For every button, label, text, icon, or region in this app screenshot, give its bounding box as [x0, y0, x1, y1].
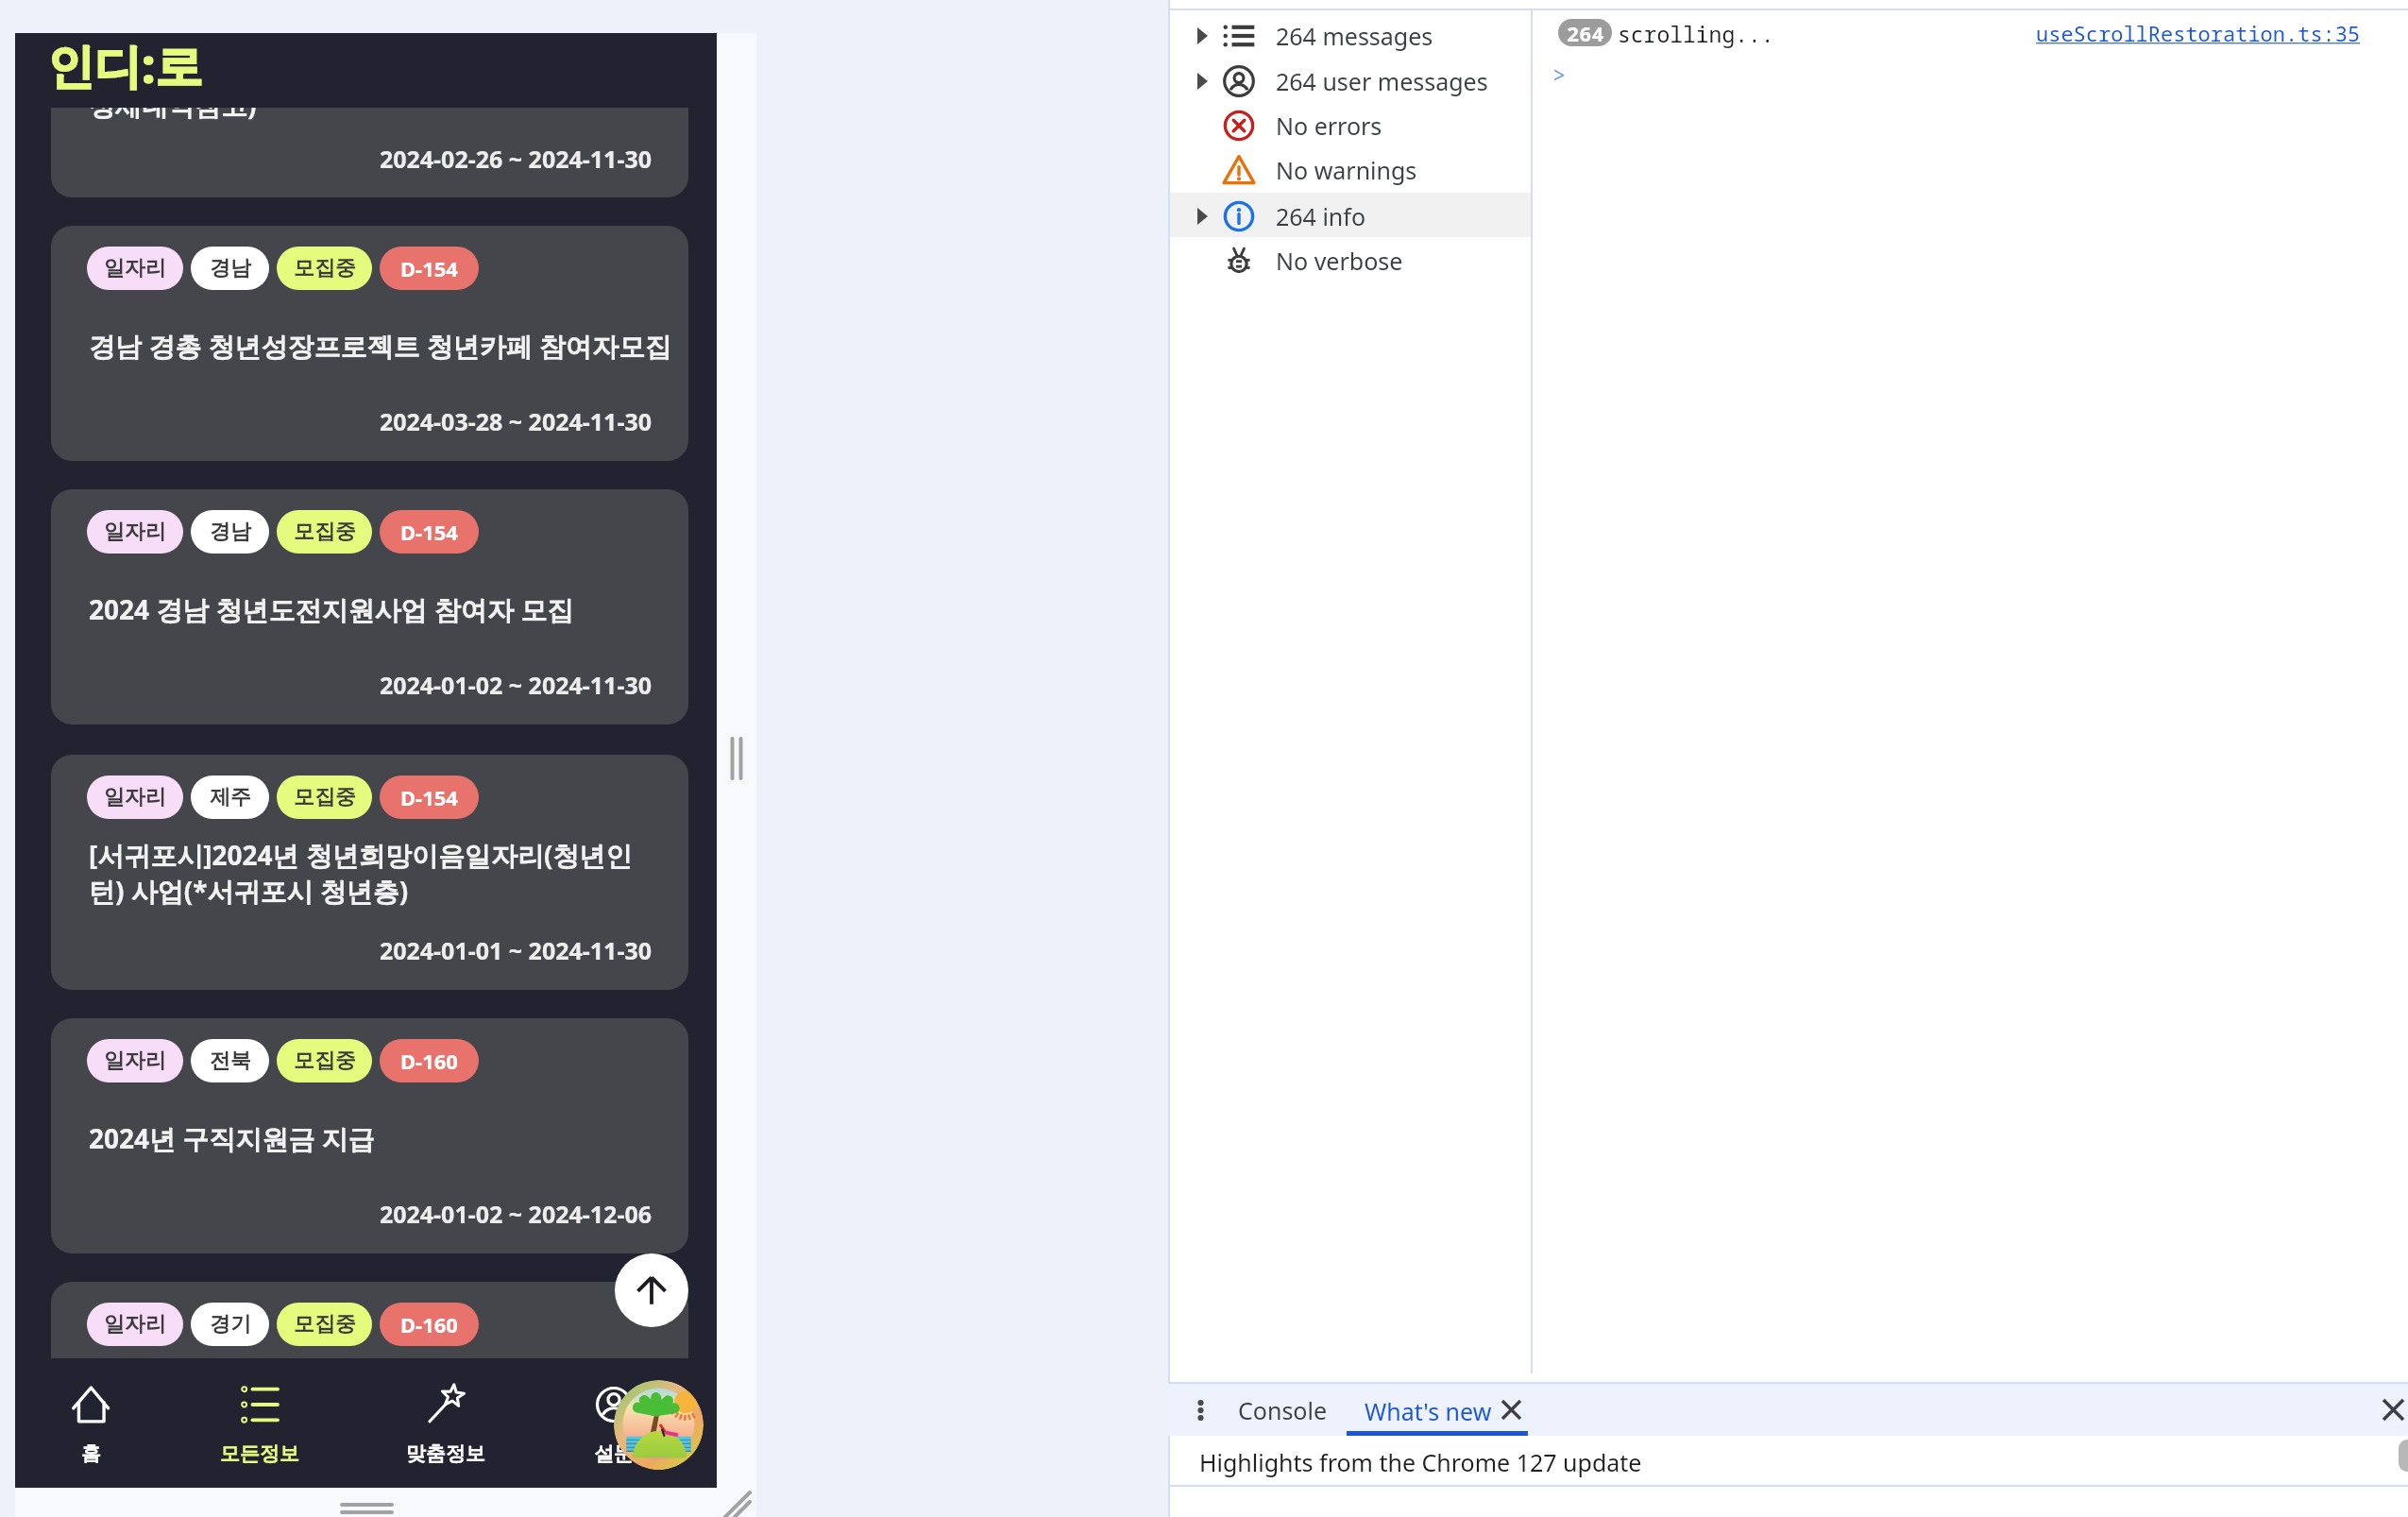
button[interactable]: D-160	[380, 1303, 479, 1346]
button[interactable]: 전북	[191, 1039, 269, 1082]
staticText: 설문	[594, 1441, 634, 1466]
button[interactable]: 모집중	[277, 1039, 372, 1082]
staticText: 2024 경남 청년도전지원사업 참여자 모집	[89, 591, 574, 627]
staticText: [서귀포시]2024년 청년희망이음일자리(청년인	[89, 837, 633, 873]
button[interactable]: Profile	[614, 1380, 704, 1470]
button[interactable]: 모집중	[277, 1303, 372, 1346]
button[interactable]	[1170, 58, 1531, 105]
button[interactable]: 일자리	[87, 510, 183, 554]
staticText: 인디:로	[47, 33, 203, 97]
staticText: >	[1552, 59, 1567, 90]
button[interactable]: 일자리	[87, 247, 183, 290]
staticText: 홈	[81, 1441, 101, 1466]
staticText: What's new	[1365, 1395, 1492, 1427]
button[interactable]: 모든정보	[203, 1364, 316, 1482]
button[interactable]: 일자리	[51, 755, 688, 990]
staticText: 일자리	[104, 1311, 166, 1338]
staticText: No verbose	[1276, 245, 1403, 277]
staticText: 2024-02-26 ~ 2024-11-30	[51, 143, 652, 175]
button[interactable]	[1170, 237, 1531, 284]
staticText: 264 messages	[1276, 20, 1433, 52]
staticText: useScrollRestoration.ts:35	[2036, 19, 2361, 47]
button[interactable]: D-160	[380, 1039, 479, 1082]
button[interactable]: 제주	[191, 776, 269, 819]
staticText: 모집중	[294, 255, 356, 281]
staticText: 일자리	[104, 1048, 166, 1074]
staticText: 2024-03-28 ~ 2024-11-30	[51, 405, 652, 437]
button[interactable]: Console	[1228, 1388, 1338, 1432]
staticText: 모든정보	[220, 1441, 299, 1466]
staticText: 일자리	[104, 784, 166, 810]
button[interactable]: D-154	[380, 510, 479, 554]
button[interactable]	[1170, 146, 1531, 194]
button[interactable]: 상세내역참고)	[51, 108, 688, 197]
button[interactable]: 일자리	[87, 1303, 183, 1346]
staticText: 경기	[210, 1311, 251, 1338]
button[interactable]: 모집중	[277, 776, 372, 819]
button[interactable]: 맞춤정보	[389, 1364, 502, 1482]
staticText: Console	[1238, 1394, 1328, 1426]
button[interactable]: 홈	[34, 1364, 147, 1482]
staticText: 2024년 구직지원금 지급	[89, 1120, 375, 1156]
button[interactable]: 일자리	[87, 1039, 183, 1082]
staticText: scrolling...	[1618, 19, 1774, 48]
button[interactable]: 설문	[557, 1364, 670, 1482]
button[interactable]: 모집중	[277, 247, 372, 290]
button[interactable]: 일자리	[51, 489, 688, 724]
button[interactable]: Close drawer	[2374, 1390, 2408, 1429]
button[interactable]: 경기	[191, 1303, 269, 1346]
staticText: 전북	[210, 1048, 251, 1074]
button[interactable]	[1170, 102, 1531, 149]
staticText: 경남 경총 청년성장프로젝트 청년카페 참여자모집	[89, 328, 672, 364]
button[interactable]	[1170, 12, 1531, 60]
staticText: Highlights from the Chrome 127 update	[1199, 1446, 1642, 1478]
staticText: 일자리	[104, 519, 166, 545]
staticText: 모집중	[294, 519, 356, 545]
staticText: No errors	[1276, 110, 1382, 142]
staticText: D-154	[400, 518, 458, 546]
button[interactable]: Scroll to top	[615, 1253, 688, 1327]
staticText: 모집중	[294, 784, 356, 810]
staticText: 제주	[210, 784, 251, 810]
staticText: 경남	[210, 519, 251, 545]
staticText: 2024-01-01 ~ 2024-11-30	[51, 934, 652, 966]
staticText: D-160	[400, 1310, 458, 1338]
button[interactable]: 모집중	[277, 510, 372, 554]
staticText: 맞춤정보	[406, 1441, 485, 1466]
staticText: 상세내역참고)	[89, 108, 257, 123]
button[interactable]: 일자리	[87, 776, 183, 819]
staticText: 일자리	[104, 255, 166, 281]
staticText: 2024-01-02 ~ 2024-12-06	[51, 1198, 652, 1230]
staticText: 모집중	[294, 1311, 356, 1338]
staticText: 2024-01-02 ~ 2024-11-30	[51, 669, 652, 701]
staticText: No warnings	[1276, 154, 1417, 186]
button[interactable]: 일자리	[51, 226, 688, 461]
staticText: 264 info	[1276, 200, 1366, 232]
staticText: 264 user messages	[1276, 65, 1488, 97]
staticText: 턴) 사업(*서귀포시 청년층)	[89, 873, 409, 909]
button[interactable]: 경남	[191, 510, 269, 554]
button[interactable]: More options	[1188, 1391, 1214, 1429]
button[interactable]: What's new	[1347, 1388, 1528, 1432]
staticText: 264	[1567, 19, 1604, 46]
button[interactable]: 일자리	[51, 1282, 688, 1358]
staticText: D-154	[400, 254, 458, 282]
staticText: 모집중	[294, 1048, 356, 1074]
staticText: D-160	[400, 1047, 458, 1075]
button[interactable]	[1170, 193, 1531, 240]
staticText: D-154	[400, 783, 458, 811]
button[interactable]: 경남	[191, 247, 269, 290]
button[interactable]: D-154	[380, 247, 479, 290]
button[interactable]: 일자리	[51, 1018, 688, 1253]
button[interactable]: D-154	[380, 776, 479, 819]
staticText: 경남	[210, 255, 251, 281]
